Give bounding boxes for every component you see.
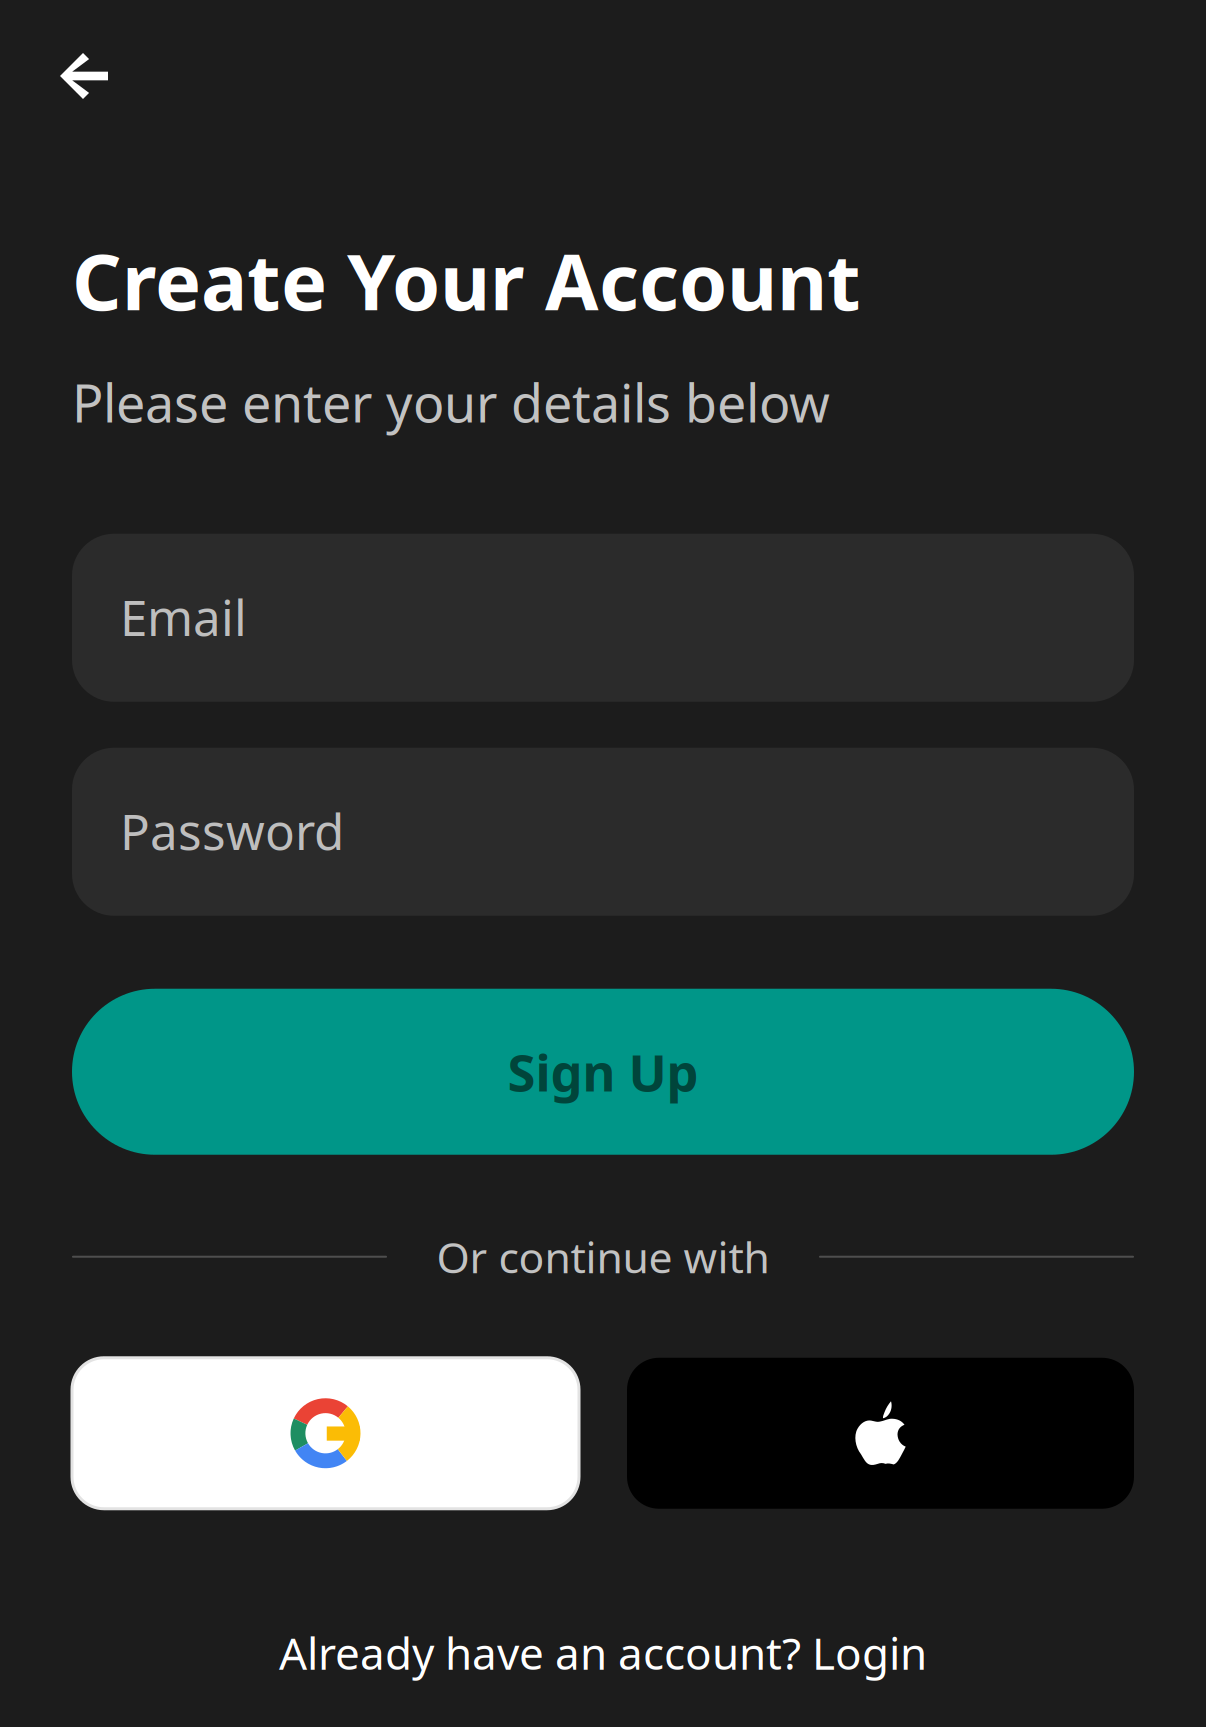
staticText: Email — [120, 584, 247, 649]
button[interactable]: Continue with Google — [72, 1358, 579, 1509]
button[interactable]: Back — [60, 44, 144, 108]
staticText: Sign Up — [507, 1038, 698, 1105]
button[interactable]: Sign Up — [72, 989, 1134, 1155]
staticText: Password — [120, 798, 344, 863]
button[interactable]: Continue with Apple — [627, 1358, 1134, 1509]
staticText: Or continue with — [436, 1228, 769, 1285]
staticText: Already have an account? Login — [279, 1624, 927, 1682]
button[interactable]: Already have an account? Login — [72, 1624, 1134, 1682]
staticText: Create Your Account — [72, 229, 861, 332]
staticText: Please enter your details below — [72, 368, 830, 437]
